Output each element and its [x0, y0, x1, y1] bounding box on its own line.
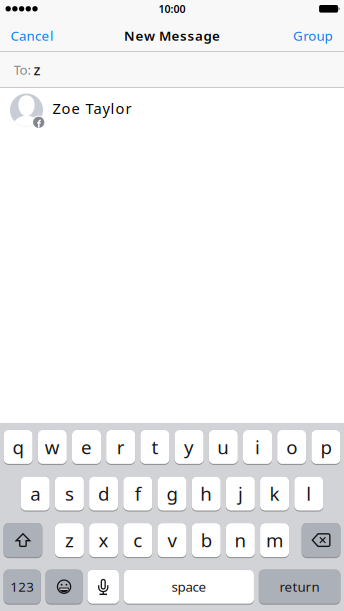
staticText: s: [65, 481, 74, 506]
button[interactable]: return: [259, 570, 340, 605]
button[interactable]: p: [311, 430, 340, 465]
staticText: Group: [293, 27, 332, 44]
button[interactable]: q: [4, 430, 33, 465]
button[interactable]: u: [209, 430, 238, 465]
staticText: p: [320, 434, 331, 459]
button[interactable]: t: [140, 430, 169, 465]
staticText: j: [238, 481, 243, 506]
button[interactable]: i: [243, 430, 272, 465]
button[interactable]: b: [192, 523, 221, 558]
button[interactable]: w: [38, 430, 67, 465]
button[interactable]: a: [21, 476, 50, 511]
staticText: Zoe Taylor: [52, 99, 131, 118]
button[interactable]: e: [72, 430, 101, 465]
button[interactable]: k: [260, 476, 289, 511]
button[interactable]: x: [89, 523, 118, 558]
button[interactable]: r: [106, 430, 135, 465]
staticText: z: [33, 60, 40, 79]
button[interactable]: 123: [4, 570, 41, 605]
button[interactable]: Zoe Taylor: [0, 88, 344, 134]
button[interactable]: Shift: [4, 523, 42, 558]
button[interactable]: Dictate: [87, 570, 119, 605]
button[interactable]: y: [175, 430, 204, 465]
staticText: m: [266, 528, 283, 552]
staticText: y: [184, 434, 194, 459]
staticText: o: [286, 434, 297, 459]
button[interactable]: f: [123, 476, 152, 511]
staticText: u: [217, 434, 229, 459]
button[interactable]: c: [123, 523, 152, 558]
button[interactable]: n: [226, 523, 255, 558]
staticText: x: [99, 528, 109, 552]
staticText: w: [45, 434, 60, 459]
staticText: a: [30, 481, 40, 506]
button[interactable]: space: [124, 570, 254, 605]
staticText: e: [81, 434, 92, 459]
staticText: To:: [13, 61, 31, 78]
staticText: k: [270, 481, 280, 506]
button[interactable]: Emoji: [45, 570, 82, 605]
button[interactable]: g: [157, 476, 186, 511]
button[interactable]: Cancel: [10, 27, 53, 44]
staticText: r: [117, 434, 125, 459]
button[interactable]: j: [226, 476, 255, 511]
button[interactable]: s: [55, 476, 84, 511]
staticText: New Message: [124, 27, 220, 44]
staticText: c: [133, 528, 142, 552]
staticText: z: [65, 528, 74, 552]
button[interactable]: o: [277, 430, 306, 465]
staticText: Cancel: [10, 27, 53, 44]
staticText: b: [201, 528, 212, 552]
staticText: q: [13, 434, 24, 459]
staticText: 10:00: [158, 2, 185, 16]
staticText: t: [151, 434, 158, 459]
staticText: v: [167, 528, 176, 552]
button[interactable]: v: [157, 523, 186, 558]
staticText: g: [166, 481, 177, 506]
staticText: d: [98, 481, 109, 506]
staticText: h: [200, 481, 212, 506]
button[interactable]: d: [89, 476, 118, 511]
staticText: n: [234, 528, 246, 552]
staticText: return: [280, 578, 320, 595]
staticText: f: [135, 481, 141, 506]
button[interactable]: l: [294, 476, 323, 511]
button[interactable]: Delete: [302, 523, 340, 558]
staticText: l: [306, 481, 311, 506]
button[interactable]: h: [192, 476, 221, 511]
staticText: 123: [10, 578, 34, 595]
button[interactable]: Group: [293, 27, 332, 44]
staticText: i: [255, 434, 260, 459]
staticText: space: [171, 578, 206, 595]
button[interactable]: m: [260, 523, 289, 558]
button[interactable]: z: [55, 523, 84, 558]
